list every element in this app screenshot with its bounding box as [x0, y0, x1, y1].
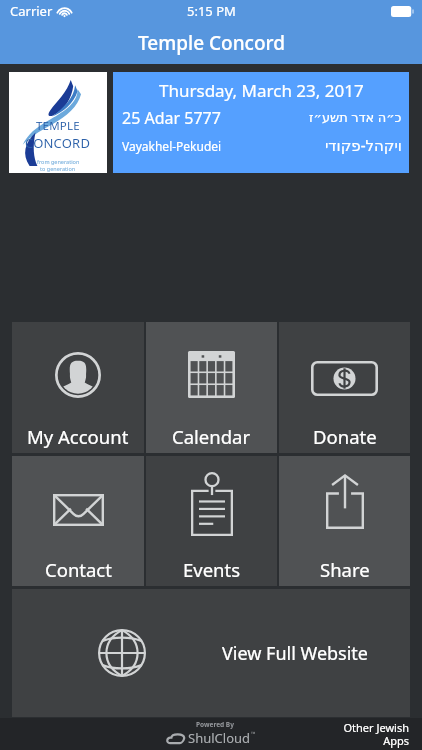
button[interactable]: My Account: [12, 322, 144, 453]
staticText: Share: [320, 557, 370, 582]
staticText: Vayakhel-Pekudei: [122, 138, 222, 154]
other: Contact: [53, 494, 104, 526]
button[interactable]: Thursday, March 23, 2017: [113, 72, 409, 173]
staticText: ויקהל-פקודי: [325, 135, 402, 155]
staticText: Events: [183, 557, 241, 582]
staticText: CONCORD: [25, 134, 91, 152]
staticText: Contact: [45, 557, 112, 582]
staticText: to generation: [40, 165, 76, 172]
staticText: 5:15 PM: [187, 2, 236, 20]
staticText: 25 Adar 5777: [122, 107, 221, 129]
staticText: Calendar: [172, 424, 251, 449]
staticText: ShulCloud: [188, 729, 251, 747]
staticText: My Account: [27, 424, 129, 449]
staticText: Donate: [313, 424, 377, 449]
other: My Account: [55, 352, 101, 398]
button[interactable]: Events: [146, 456, 277, 586]
staticText: Thursday, March 23, 2017: [159, 79, 364, 102]
staticText: כ״ה אדר תשע״ז: [309, 108, 402, 126]
staticText: Temple Concord: [138, 30, 285, 56]
staticText: from generation: [37, 158, 80, 165]
other: Share: [326, 474, 364, 529]
button[interactable]: Donate: [279, 322, 410, 453]
button[interactable]: Share: [279, 456, 410, 586]
other: Calendar: [188, 351, 235, 398]
other: View Full Website: [98, 629, 146, 677]
staticText: ™: [251, 730, 256, 738]
button[interactable]: Contact: [12, 456, 144, 586]
staticText: Other Jewish Apps: [343, 720, 409, 748]
other: Donate: [311, 361, 378, 396]
staticText: TEMPLE: [36, 118, 80, 134]
staticText: Carrier: [10, 2, 53, 20]
staticText: Powered By: [196, 720, 234, 729]
button[interactable]: TEMPLE: [9, 72, 107, 173]
other: Events: [191, 472, 233, 536]
button[interactable]: View Full Website: [12, 589, 410, 717]
staticText: View Full Website: [222, 641, 369, 666]
button[interactable]: Calendar: [146, 322, 277, 453]
